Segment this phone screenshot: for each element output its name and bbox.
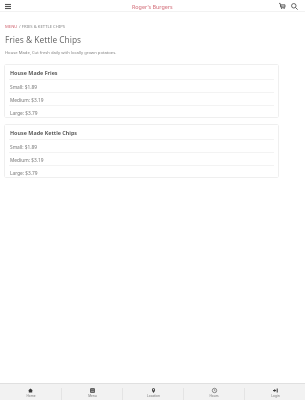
staticText: Hours [209, 394, 219, 398]
button[interactable]: Small: $1.89 [4, 139, 279, 152]
button[interactable]: Menu [3, 1, 13, 11]
button[interactable]: Home [0, 384, 61, 400]
button[interactable]: Medium: $3.19 [4, 92, 279, 105]
button[interactable]: Location [123, 384, 183, 400]
button[interactable]: Large: $3.79 [4, 165, 279, 178]
button[interactable]: MENU [5, 24, 18, 30]
staticText: House Made, Cut fresh daily with locally… [5, 50, 117, 56]
staticText: Home [26, 394, 36, 398]
staticText: Location [147, 394, 160, 398]
staticText: House Made Fries [10, 69, 58, 76]
button[interactable]: Small: $1.89 [4, 79, 279, 92]
button[interactable]: Login [245, 384, 305, 400]
staticText: Login [271, 394, 280, 398]
staticText: Menu [88, 394, 97, 398]
staticText: Medium: $3.19 [10, 97, 44, 104]
staticText: Roger's Burgers [132, 3, 173, 10]
staticText: Large: $3.79 [10, 170, 38, 177]
staticText: Large: $3.79 [10, 110, 38, 117]
staticText: Small: $1.89 [10, 144, 38, 151]
button[interactable]: Search [288, 0, 301, 12]
staticText: / FRIES & KETTLE CHIPS [18, 24, 66, 30]
staticText: Medium: $3.19 [10, 157, 44, 164]
button[interactable]: Large: $3.79 [4, 105, 279, 118]
staticText: House Made Kettle Chips [10, 129, 78, 136]
button[interactable]: Shopping cart [275, 0, 288, 12]
staticText: Small: $1.89 [10, 84, 38, 91]
staticText: Fries & Kettle Chips [5, 34, 82, 45]
button[interactable]: Hours [184, 384, 244, 400]
button[interactable]: Menu [62, 384, 122, 400]
button[interactable]: Medium: $3.19 [4, 152, 279, 165]
